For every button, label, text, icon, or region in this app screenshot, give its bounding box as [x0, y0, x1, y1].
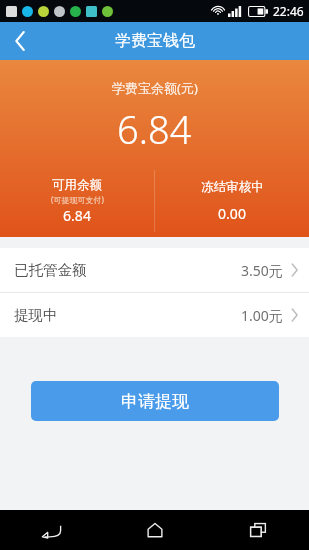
staticText: (可提现可支付) [51, 194, 104, 205]
button[interactable]: 已托管金额 [0, 248, 309, 292]
button[interactable]: Recents [206, 510, 309, 550]
button[interactable]: 提现中 [0, 293, 309, 337]
button[interactable]: Home [103, 510, 206, 550]
staticText: 学费宝余额(元) [112, 79, 198, 97]
staticText: 已托管金额 [14, 261, 87, 279]
staticText: 22:46 [273, 3, 304, 19]
staticText: 1.00元 [241, 306, 283, 325]
staticText: 冻结审核中 [201, 179, 264, 195]
staticText: 6.84 [63, 206, 91, 225]
button[interactable]: Back [0, 22, 40, 60]
staticText: 学费宝钱包 [115, 31, 195, 51]
button[interactable]: Back [0, 510, 103, 550]
button[interactable]: 申请提现 [31, 381, 279, 421]
staticText: 3.50元 [241, 261, 283, 280]
staticText: 可用余额 [52, 177, 102, 193]
staticText: 提现中 [14, 306, 58, 324]
staticText: 6.84 [117, 103, 192, 155]
staticText: 0.00 [218, 204, 246, 223]
staticText: 申请提现 [121, 391, 189, 412]
